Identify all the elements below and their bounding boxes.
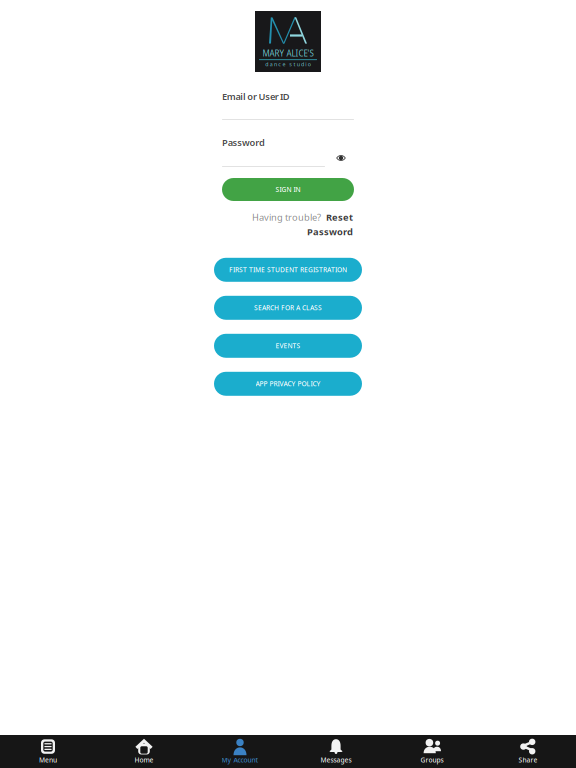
button[interactable]: Messages	[288, 733, 384, 768]
button[interactable]: SEARCH FOR A CLASS	[214, 296, 362, 320]
button[interactable]: Share	[480, 733, 576, 768]
button[interactable]: Having trouble?	[223, 211, 353, 238]
staticText: SIGN IN	[275, 185, 300, 194]
staticText: Share	[518, 756, 537, 764]
button[interactable]: APP PRIVACY POLICY	[214, 372, 362, 396]
staticText: Password	[222, 136, 265, 149]
staticText: My Account	[221, 756, 258, 764]
staticText: Home	[134, 756, 153, 764]
button[interactable]: Home	[96, 733, 192, 768]
staticText: Reset	[326, 211, 353, 223]
button[interactable]: EVENTS	[214, 334, 362, 358]
staticText: Password	[307, 225, 353, 238]
staticText: dance studio	[265, 61, 311, 68]
button[interactable]: FIRST TIME STUDENT REGISTRATION	[214, 258, 362, 282]
staticText: MARY ALICE'S	[262, 48, 313, 59]
staticText: Messages	[320, 756, 351, 764]
button[interactable]: SIGN IN	[222, 178, 354, 201]
staticText: SEARCH FOR A CLASS	[254, 303, 322, 312]
staticText: APP PRIVACY POLICY	[255, 379, 320, 388]
button[interactable]: My Account	[192, 733, 288, 768]
staticText: Having trouble?	[252, 211, 321, 223]
button[interactable]: Show password	[330, 153, 352, 163]
staticText: Menu	[39, 756, 57, 764]
staticText: FIRST TIME STUDENT REGISTRATION	[229, 265, 347, 274]
staticText: Email or User ID	[222, 90, 290, 103]
button[interactable]: Groups	[384, 733, 480, 768]
staticText: Groups	[420, 756, 443, 764]
staticText: EVENTS	[275, 341, 300, 350]
button[interactable]: Menu	[0, 733, 96, 768]
